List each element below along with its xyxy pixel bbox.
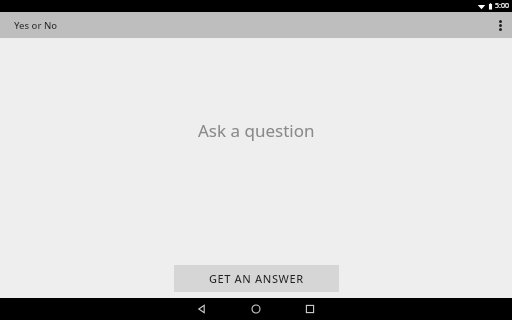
staticText: 5:00 [495,1,509,11]
button[interactable]: GET AN ANSWER [174,265,339,292]
button[interactable]: More options [488,13,512,37]
staticText: GET AN ANSWER [209,271,304,286]
button[interactable]: Back [185,298,219,320]
button[interactable]: Recent apps [293,298,327,320]
button[interactable]: Home [239,298,273,320]
staticText: Ask a question [198,119,315,142]
staticText: Yes or No [14,19,58,32]
